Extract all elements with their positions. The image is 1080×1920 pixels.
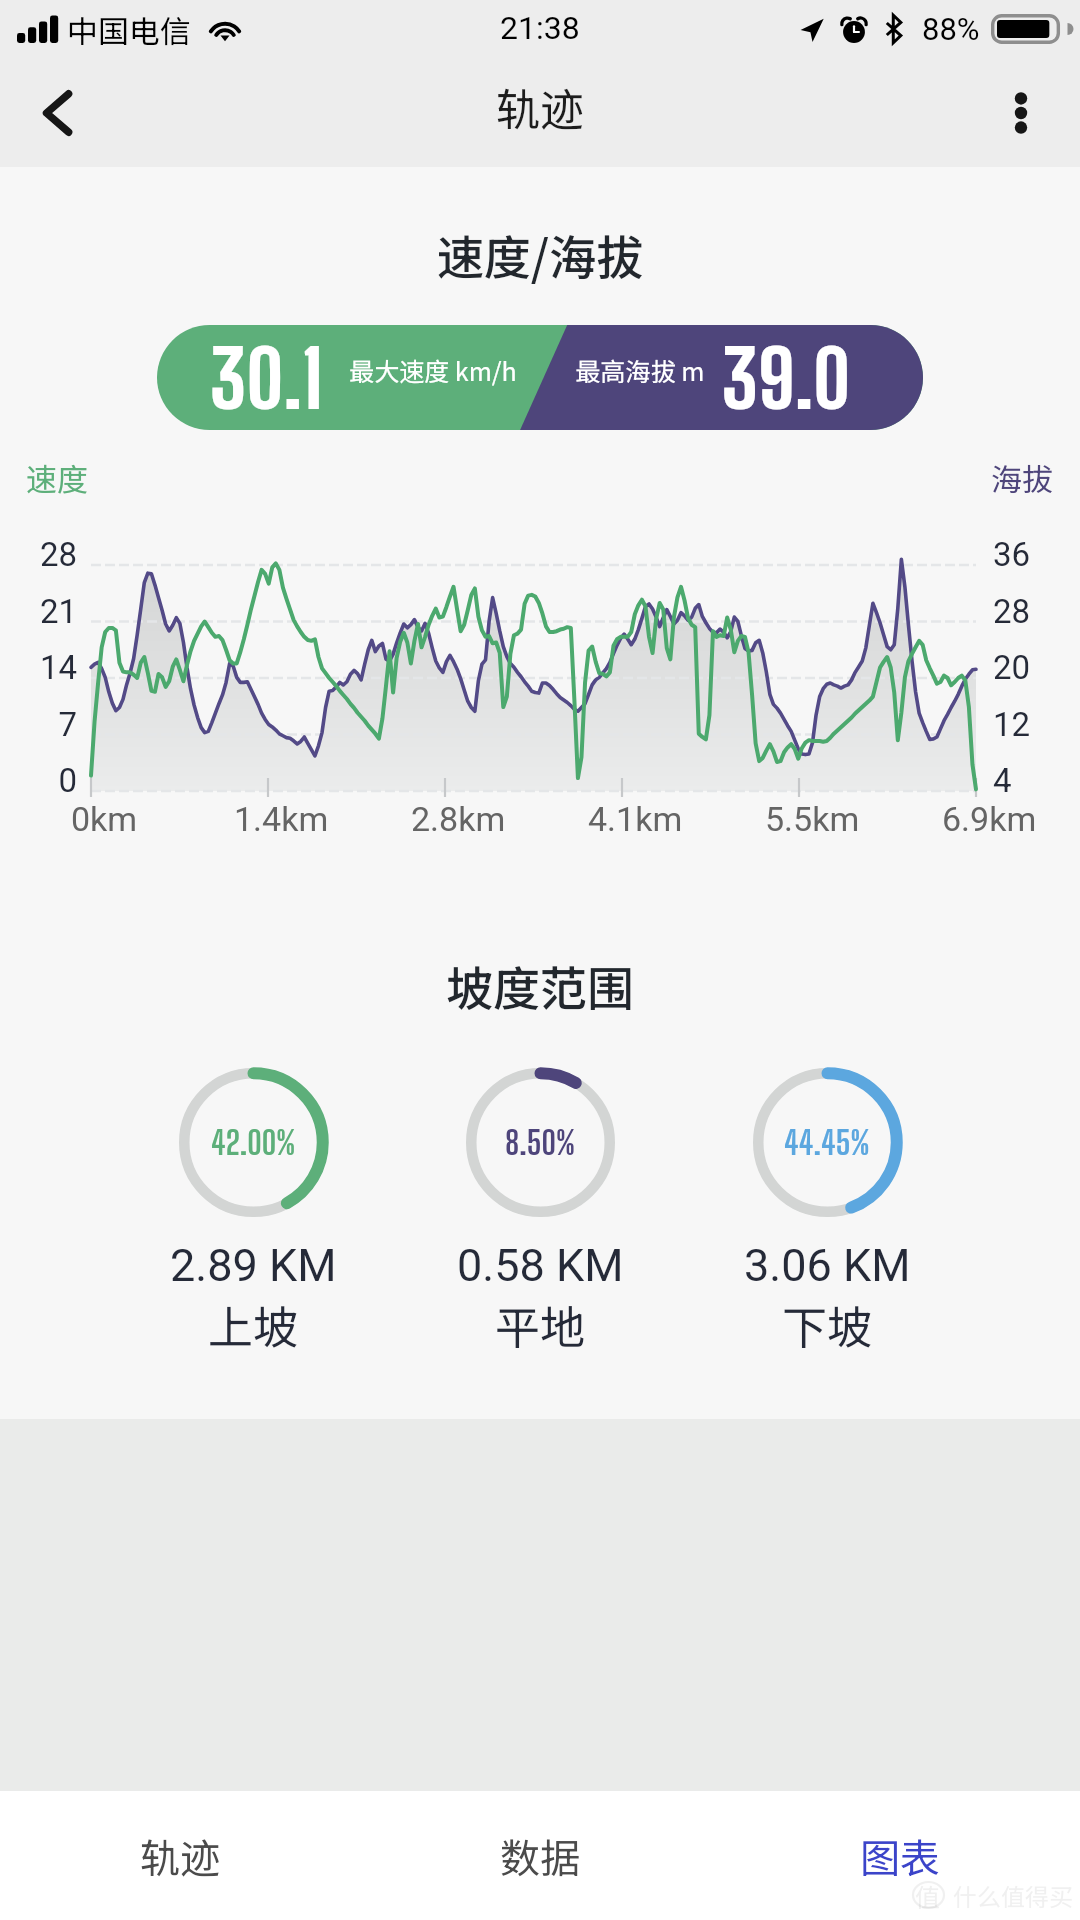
button[interactable]: 30.1	[157, 325, 923, 430]
staticText: 坡度范围	[0, 951, 1080, 1019]
staticText: 轨迹	[496, 75, 584, 139]
staticText: 值	[915, 1878, 941, 1914]
staticText: 下坡	[782, 1292, 873, 1357]
staticText: 21	[39, 592, 77, 631]
staticText: 5.5km	[765, 799, 860, 839]
staticText: 7	[58, 705, 77, 744]
staticText: 0	[58, 761, 77, 800]
staticText: 39.0	[686, 332, 886, 425]
staticText: 上坡	[208, 1292, 299, 1357]
staticText: 什么值得买	[953, 1878, 1073, 1913]
staticText: 28	[993, 592, 1031, 631]
staticText: 中国电信	[67, 7, 191, 52]
button[interactable]: 8.50%	[420, 1068, 660, 1357]
staticText: 4	[993, 761, 1012, 800]
staticText: 平地	[495, 1292, 586, 1357]
staticText: 6.9km	[942, 799, 1037, 839]
staticText: 2.89 KM	[170, 1239, 337, 1292]
staticText: 14	[39, 648, 77, 687]
staticText: 30.1	[166, 332, 366, 425]
button[interactable]: 数据	[360, 1791, 720, 1920]
staticText: 3.06 KM	[744, 1239, 911, 1292]
staticText: 42.00%	[211, 1123, 296, 1163]
staticText: 数据	[500, 1827, 580, 1885]
button[interactable]: 图表	[720, 1791, 1080, 1920]
button[interactable]: 44.45%	[707, 1068, 947, 1357]
staticText: 12	[993, 705, 1031, 744]
staticText: 1.4km	[234, 799, 329, 839]
staticText: 最大速度 km/h	[333, 352, 533, 388]
staticText: 海拔	[0, 455, 1053, 500]
staticText: 4.1km	[588, 799, 683, 839]
staticText: 最高海拔 m	[540, 352, 740, 388]
staticText: 36	[993, 535, 1031, 574]
button[interactable]: More options	[962, 58, 1080, 168]
staticText: 28	[39, 535, 77, 574]
staticText: 20	[993, 648, 1031, 687]
staticText: 88%	[922, 11, 980, 47]
staticText: 2.8km	[411, 799, 506, 839]
staticText: 44.45%	[784, 1123, 871, 1163]
staticText: 21:38	[500, 9, 580, 47]
button[interactable]: Back	[0, 58, 118, 168]
staticText: 轨迹	[140, 1827, 220, 1885]
staticText: 0km	[71, 799, 138, 839]
staticText: 图表	[860, 1827, 940, 1885]
button[interactable]: 轨迹	[0, 1791, 360, 1920]
staticText: 速度/海拔	[0, 220, 1080, 288]
staticText: 0.58 KM	[457, 1239, 624, 1292]
staticText: 8.50%	[505, 1123, 576, 1163]
staticText: 速度	[26, 455, 88, 500]
button[interactable]: 42.00%	[133, 1068, 373, 1357]
